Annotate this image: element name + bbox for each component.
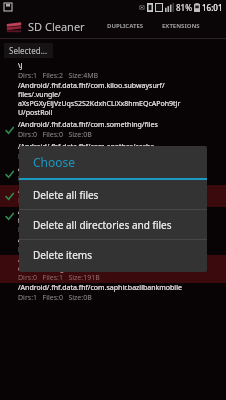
- staticText: /Android/.fhf.data.fhf/com.samsung.andro…: [18, 235, 184, 245]
- staticText: 16:01: [202, 2, 223, 13]
- staticText: Dirs:0 Files:1 Size:191B: [18, 273, 100, 283]
- staticText: Dirs:1 Files:0 Size:0B: [18, 293, 92, 303]
- staticText: Dirs:0 Files:0 Size:0B: [18, 130, 92, 140]
- staticText: Dirs:0 Files:0 Size:0B: [18, 225, 92, 235]
- staticText: Choose: [33, 154, 76, 170]
- staticText: Dirs:1 Files:0 Size:191B: [18, 245, 100, 255]
- staticText: Delete all files: [33, 188, 99, 202]
- staticText: 81%: [176, 2, 192, 13]
- staticText: Selected...: [9, 45, 48, 56]
- button[interactable]: Delete all files: [19, 180, 207, 209]
- staticText: Dirs:0 Files:1 Size:19B: [18, 174, 96, 184]
- staticText: SD Cleaner: [28, 19, 85, 34]
- staticText: EXTENSIONS: [162, 22, 200, 30]
- staticText: /Android/.fhf.data.fhf/com.kiloo.subways…: [18, 81, 181, 117]
- staticText: /Android/.fhf.data.fhf/com.saphir.bazilb…: [18, 283, 182, 293]
- staticText: /Android/.fhf.data.fhf/com.fourth/tmp: [18, 186, 144, 196]
- button[interactable]: Delete items: [19, 240, 207, 269]
- button[interactable]: /Android/.fhf.data.fhf/com.fourth/tmp: [0, 185, 226, 207]
- staticText: /Android/.fhf.data.fhf/com.something/fil…: [18, 120, 158, 130]
- staticText: /Android/.fhf.data.fhf/ com.samsung.andr…: [18, 255, 135, 273]
- staticText: Dirs:1 Files:0 Size:0B: [18, 196, 92, 206]
- staticText: DUPLICATES: [107, 22, 144, 30]
- button[interactable]: Delete all directories and files: [19, 210, 207, 239]
- button[interactable]: /Android/.fhf.data.fhf/com.something/fil…: [0, 119, 226, 141]
- staticText: /Android/.fhf.data.fhf/com.microsoft.off…: [18, 207, 179, 225]
- staticText: /Android/.fhf.data.fhf/com.another/cache: [18, 142, 155, 152]
- staticText: Dirs:1 Files:2 Size:4MB: [18, 71, 99, 81]
- button[interactable]: /Android/.fhf.data.fhf/com.third/data: [0, 163, 226, 185]
- button[interactable]: EXTENSIONS: [158, 18, 204, 34]
- button[interactable]: DUPLICATES: [103, 18, 148, 34]
- staticText: /Android/.fhf.data.fhf/com.third/data: [18, 164, 140, 174]
- button[interactable]: /Android/.fhf.data.fhf/com.microsoft.off…: [0, 207, 226, 235]
- button[interactable]: Selected...: [4, 43, 53, 58]
- staticText: ✉: [139, 4, 145, 12]
- staticText: Dirs:1 Files:0 Size:191B: [18, 152, 100, 162]
- button[interactable]: /Android/.fhf.data.fhf/ com.samsung.andr…: [0, 255, 226, 283]
- staticText: Delete items: [33, 248, 92, 262]
- staticText: Delete all directories and files: [33, 218, 172, 232]
- button[interactable]: /Android/.fhf.data.fhf/com.saphir.bazilb…: [0, 283, 226, 303]
- button[interactable]: /Android/.fhf.data.fhf/com.another/cache: [0, 141, 226, 163]
- staticText: \J: [18, 61, 23, 71]
- button[interactable]: /Android/.fhf.data.fhf/com.samsung.andro…: [0, 235, 226, 255]
